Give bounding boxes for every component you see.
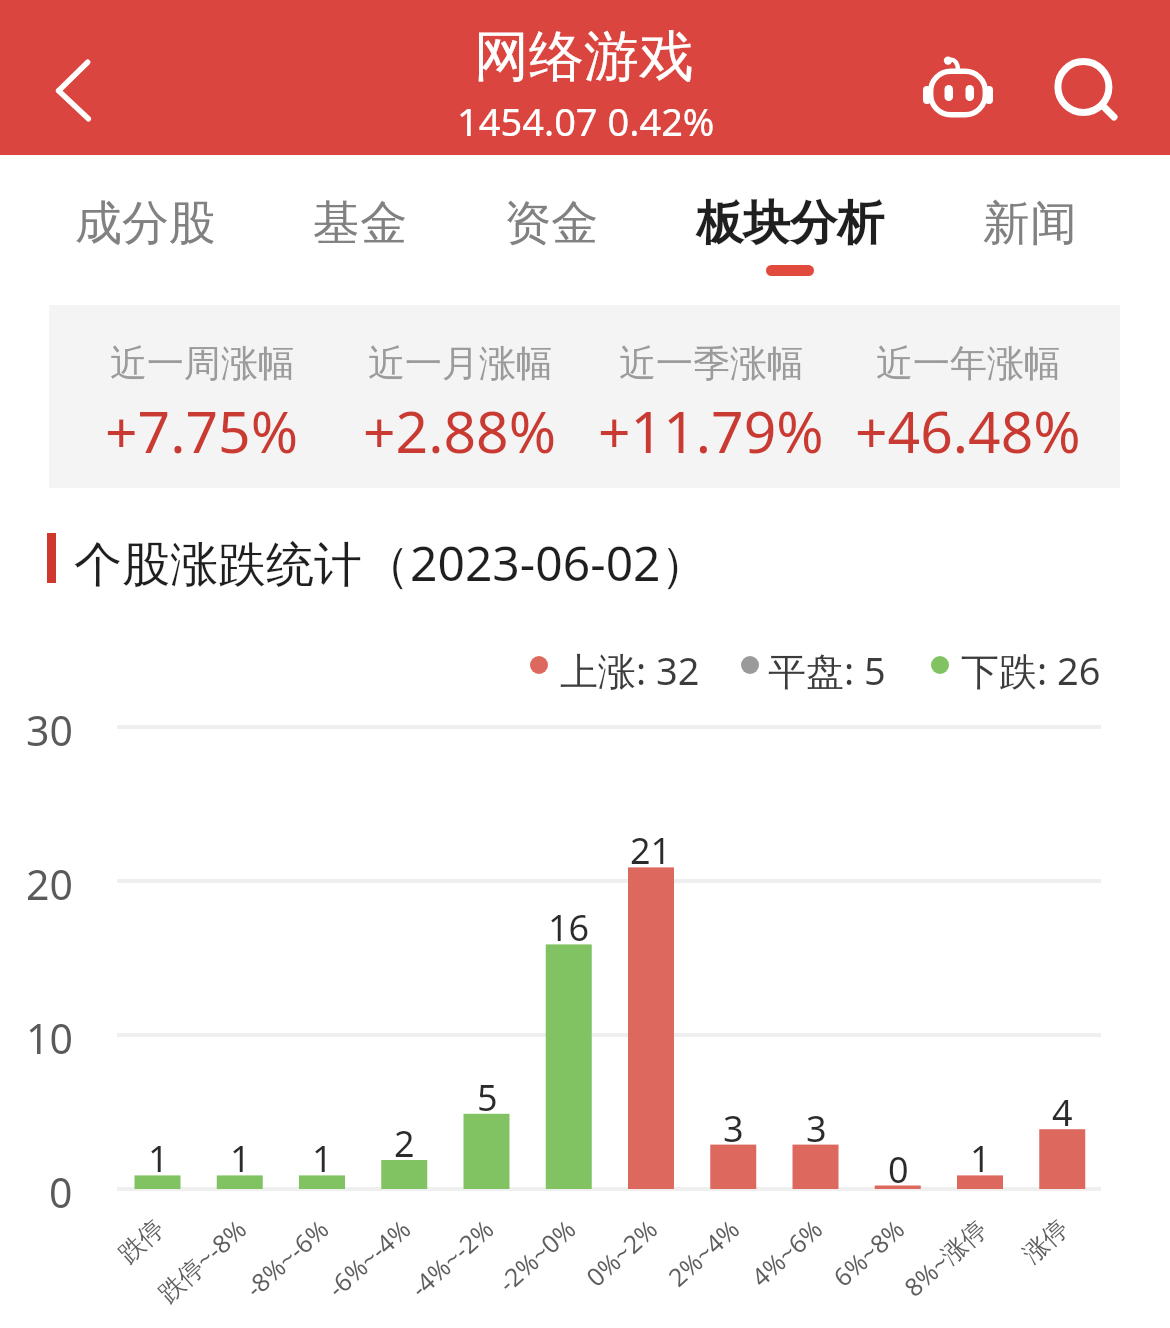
- staticText: 基金: [313, 194, 407, 253]
- staticText: 21: [630, 826, 672, 875]
- staticText: 板块分析: [696, 194, 884, 253]
- staticText: +46.48%: [855, 392, 1081, 470]
- button[interactable]: AI assistant: [910, 41, 1005, 131]
- staticText: 资金: [504, 194, 598, 253]
- staticText: +2.88%: [363, 392, 557, 470]
- staticText: 0%~2%: [578, 1211, 664, 1293]
- staticText: -2%~0%: [490, 1211, 582, 1299]
- staticText: 1: [148, 1134, 169, 1183]
- staticText: 新闻: [983, 194, 1077, 253]
- staticText: 网络游戏: [474, 22, 694, 91]
- staticText: 1: [970, 1134, 991, 1183]
- staticText: 上涨: 32: [560, 644, 700, 696]
- staticText: 10: [26, 1010, 73, 1066]
- staticText: 2%~4%: [660, 1211, 746, 1293]
- staticText: 涨停: [1016, 1213, 1074, 1269]
- staticText: 成分股: [75, 194, 216, 253]
- staticText: +11.79%: [598, 392, 824, 470]
- staticText: 0: [888, 1145, 909, 1194]
- staticText: +7.75%: [105, 392, 299, 470]
- button[interactable]: 资金: [466, 177, 636, 287]
- button[interactable]: 基金: [280, 177, 440, 287]
- staticText: 6%~8%: [825, 1211, 911, 1293]
- staticText: 1: [312, 1134, 333, 1183]
- staticText: 8%~涨停: [896, 1211, 993, 1304]
- staticText: 4%~6%: [743, 1211, 829, 1293]
- button[interactable]: 新闻: [940, 177, 1120, 287]
- staticText: 3: [806, 1104, 827, 1153]
- staticText: 下跌: 26: [961, 644, 1101, 696]
- staticText: -8%~-6%: [238, 1211, 335, 1304]
- button[interactable]: 成分股: [50, 177, 240, 287]
- button[interactable]: Back: [28, 32, 128, 127]
- staticText: 平盘: 5: [768, 644, 886, 696]
- staticText: 1454.07 0.42%: [457, 95, 715, 147]
- staticText: 2: [394, 1119, 415, 1168]
- staticText: -6%~-4%: [320, 1211, 417, 1304]
- staticText: 3: [723, 1104, 744, 1153]
- button[interactable]: Search: [1036, 35, 1131, 125]
- button[interactable]: 板块分析: [675, 177, 905, 287]
- staticText: 跌停: [112, 1213, 170, 1269]
- staticText: 近一周涨幅: [110, 340, 295, 387]
- staticText: 跌停~-8%: [150, 1211, 253, 1309]
- staticText: 16: [548, 903, 590, 952]
- staticText: 近一月涨幅: [368, 340, 553, 387]
- staticText: 近一季涨幅: [619, 340, 804, 387]
- staticText: -4%~-2%: [403, 1211, 500, 1304]
- staticText: 4: [1052, 1088, 1073, 1137]
- staticText: 个股涨跌统计（2023-06-02）: [74, 530, 709, 596]
- staticText: 0: [49, 1164, 73, 1220]
- staticText: 5: [477, 1073, 498, 1122]
- staticText: 1: [230, 1134, 251, 1183]
- staticText: 20: [26, 856, 73, 912]
- staticText: 近一年涨幅: [876, 340, 1061, 387]
- staticText: 30: [26, 702, 73, 758]
